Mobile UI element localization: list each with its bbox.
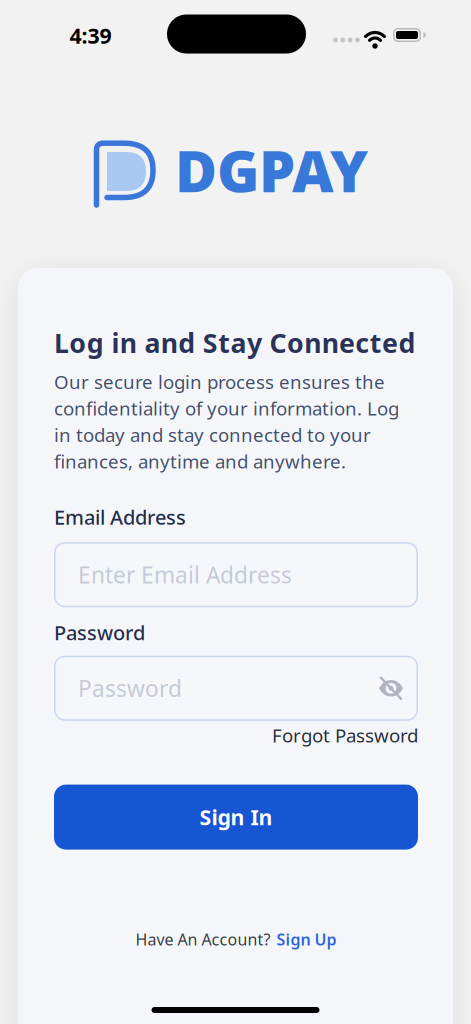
staticText: Sign In bbox=[199, 803, 272, 831]
staticText: Have An Account? bbox=[135, 929, 270, 950]
staticText: 4:39 bbox=[69, 21, 111, 50]
button[interactable]: Sign In bbox=[54, 785, 418, 850]
button[interactable]: Enter Email Address bbox=[54, 542, 418, 607]
button[interactable]: Show password bbox=[379, 679, 403, 697]
staticText: Forgot Password bbox=[272, 723, 418, 748]
staticText: Log in and Stay Connected bbox=[54, 325, 415, 360]
staticText: Sign Up bbox=[276, 929, 336, 950]
button[interactable]: Sign Up bbox=[276, 929, 336, 950]
staticText: Enter Email Address bbox=[78, 560, 292, 590]
staticText: Email Address bbox=[54, 504, 186, 530]
button[interactable]: Forgot Password bbox=[272, 723, 418, 748]
staticText: Our secure login process ensures the con… bbox=[54, 369, 399, 474]
staticText: Password bbox=[54, 619, 145, 646]
staticText: DGPAY bbox=[175, 132, 368, 208]
staticText: Password bbox=[78, 673, 182, 703]
button[interactable]: Password bbox=[54, 656, 418, 721]
